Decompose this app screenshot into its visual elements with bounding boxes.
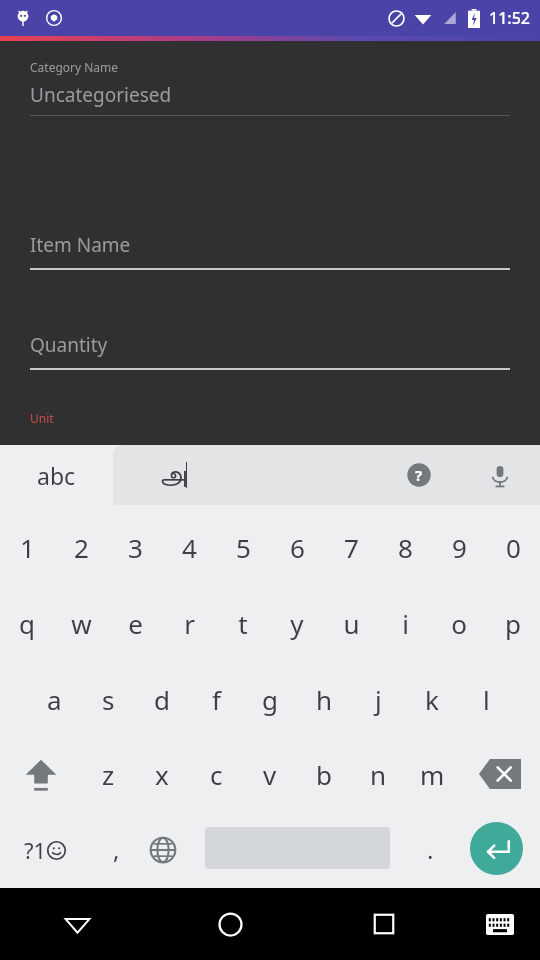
- button[interactable]: d: [135, 661, 189, 737]
- button[interactable]: h: [297, 661, 351, 737]
- button[interactable]: abc: [0, 445, 113, 505]
- button[interactable]: Help: [404, 460, 434, 490]
- staticText: அ: [159, 462, 186, 488]
- staticText: s: [102, 682, 115, 717]
- staticText: v: [263, 757, 277, 792]
- staticText: l: [483, 682, 490, 717]
- button[interactable]: i: [378, 585, 432, 661]
- button[interactable]: v: [243, 737, 297, 811]
- button[interactable]: Item Name: [0, 219, 540, 279]
- staticText: e: [128, 606, 143, 641]
- button[interactable]: Backspace: [459, 737, 540, 811]
- button[interactable]: Back: [0, 888, 154, 960]
- button[interactable]: c: [189, 737, 243, 811]
- button[interactable]: 4: [162, 510, 216, 585]
- button[interactable]: f: [189, 661, 243, 737]
- staticText: g: [262, 682, 278, 717]
- button[interactable]: 1: [0, 510, 54, 585]
- button[interactable]: Hide keyboard: [460, 888, 540, 960]
- button[interactable]: j: [351, 661, 405, 737]
- staticText: 1: [20, 530, 35, 565]
- staticText: m: [420, 757, 445, 792]
- staticText: n: [370, 757, 387, 792]
- staticText: 9: [452, 530, 467, 565]
- staticText: w: [71, 606, 92, 641]
- button[interactable]: q: [0, 585, 54, 661]
- staticText: Unit: [30, 410, 54, 426]
- staticText: f: [212, 682, 221, 717]
- button[interactable]: Enter: [470, 822, 523, 875]
- button[interactable]: Home: [154, 888, 307, 960]
- staticText: z: [102, 757, 115, 792]
- staticText: q: [19, 606, 35, 641]
- button[interactable]: s: [81, 661, 135, 737]
- button[interactable]: y: [270, 585, 324, 661]
- staticText: ,: [113, 833, 120, 866]
- staticText: Category Name: [30, 59, 119, 75]
- staticText: i: [402, 606, 409, 641]
- staticText: Uncategoriesed: [30, 82, 172, 108]
- button[interactable]: 7: [324, 510, 378, 585]
- button[interactable]: x: [135, 737, 189, 811]
- button[interactable]: a: [27, 661, 81, 737]
- button[interactable]: w: [54, 585, 108, 661]
- button[interactable]: Category Name: [0, 51, 540, 131]
- button[interactable]: o: [432, 585, 486, 661]
- staticText: a: [47, 682, 62, 717]
- staticText: d: [154, 682, 170, 717]
- staticText: h: [316, 682, 333, 717]
- button[interactable]: Recents: [307, 888, 460, 960]
- button[interactable]: .: [405, 811, 455, 888]
- button[interactable]: ,: [90, 811, 142, 888]
- button[interactable]: m: [405, 737, 459, 811]
- staticText: p: [505, 606, 521, 641]
- staticText: 2: [74, 530, 89, 565]
- button[interactable]: u: [324, 585, 378, 661]
- staticText: o: [451, 606, 467, 641]
- staticText: abc: [37, 460, 76, 491]
- button[interactable]: Voice input: [484, 460, 516, 492]
- button[interactable]: t: [216, 585, 270, 661]
- staticText: 5: [236, 530, 251, 565]
- button[interactable]: Shift: [0, 737, 81, 811]
- button[interactable]: Unit: [0, 403, 540, 473]
- staticText: 4: [182, 530, 197, 565]
- staticText: r: [184, 606, 195, 641]
- staticText: y: [290, 606, 304, 641]
- button[interactable]: 3: [108, 510, 162, 585]
- button[interactable]: b: [297, 737, 351, 811]
- button[interactable]: 2: [54, 510, 108, 585]
- staticText: Quantity: [30, 332, 108, 358]
- staticText: b: [316, 757, 332, 792]
- button[interactable]: g: [243, 661, 297, 737]
- button[interactable]: z: [81, 737, 135, 811]
- staticText: u: [343, 606, 360, 641]
- button[interactable]: 6: [270, 510, 324, 585]
- staticText: 7: [344, 530, 359, 565]
- staticText: k: [425, 682, 439, 717]
- button[interactable]: 9: [432, 510, 486, 585]
- button[interactable]: Quantity: [0, 319, 540, 379]
- button[interactable]: Change language: [137, 811, 189, 888]
- button[interactable]: 0: [486, 510, 540, 585]
- button[interactable]: l: [459, 661, 513, 737]
- button[interactable]: e: [108, 585, 162, 661]
- button[interactable]: k: [405, 661, 459, 737]
- staticText: 11:52: [489, 7, 530, 29]
- button[interactable]: p: [486, 585, 540, 661]
- button[interactable]: 5: [216, 510, 270, 585]
- staticText: x: [155, 757, 169, 792]
- staticText: j: [375, 682, 382, 717]
- button[interactable]: n: [351, 737, 405, 811]
- staticText: ?: [415, 465, 423, 485]
- button[interactable]: r: [162, 585, 216, 661]
- staticText: 3: [128, 530, 143, 565]
- staticText: Item Name: [30, 232, 131, 258]
- button[interactable]: ?1: [0, 811, 90, 888]
- button[interactable]: அ: [113, 445, 233, 505]
- staticText: t: [238, 606, 248, 641]
- staticText: c: [210, 757, 223, 792]
- staticText: 0: [506, 530, 521, 565]
- button[interactable]: 8: [378, 510, 432, 585]
